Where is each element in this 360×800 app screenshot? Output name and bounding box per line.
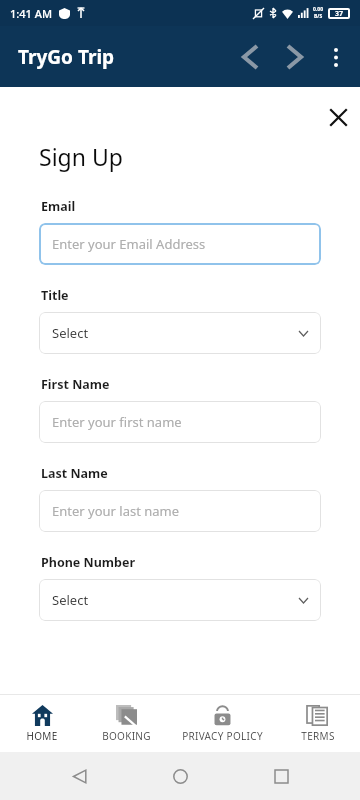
button[interactable]: Recent apps xyxy=(259,754,303,798)
button[interactable]: Select xyxy=(39,312,321,354)
staticText: Phone Number xyxy=(41,554,135,571)
staticText: B/S xyxy=(314,13,323,20)
staticText: PRIVACY POLICY xyxy=(182,729,263,743)
staticText: Enter your last name xyxy=(52,502,180,520)
staticText: Last Name xyxy=(41,465,108,482)
button[interactable]: Close xyxy=(316,95,360,139)
staticText: Enter your first name xyxy=(52,413,182,431)
button[interactable]: Back xyxy=(57,754,101,798)
staticText: Select xyxy=(52,591,89,609)
button[interactable]: Home xyxy=(158,754,202,798)
staticText: HOME xyxy=(26,729,58,743)
button[interactable]: TERMS xyxy=(275,695,360,752)
button[interactable]: Enter your last name xyxy=(39,490,321,532)
button[interactable]: BOOKING xyxy=(84,695,169,752)
button[interactable]: Back xyxy=(228,35,272,79)
button[interactable]: More options xyxy=(316,37,356,77)
staticText: 37 xyxy=(335,9,344,19)
staticText: Email xyxy=(41,198,76,215)
button[interactable]: Forward xyxy=(272,35,316,79)
button[interactable]: Select xyxy=(39,579,321,621)
staticText: Sign Up xyxy=(39,141,123,172)
staticText: 0.00 xyxy=(313,6,323,13)
staticText: BOOKING xyxy=(102,729,151,743)
staticText: Title xyxy=(41,287,69,304)
staticText: First Name xyxy=(41,376,110,393)
staticText: Select xyxy=(52,324,89,342)
button[interactable]: Enter your Email Address xyxy=(39,223,321,265)
button[interactable]: HOME xyxy=(0,695,84,752)
staticText: TryGo Trip xyxy=(18,44,115,70)
button[interactable]: PRIVACY POLICY xyxy=(169,695,275,752)
button[interactable]: Enter your first name xyxy=(39,401,321,443)
staticText: Enter your Email Address xyxy=(52,235,206,253)
staticText: TERMS xyxy=(301,729,335,743)
staticText: 1:41 AM xyxy=(10,6,53,21)
